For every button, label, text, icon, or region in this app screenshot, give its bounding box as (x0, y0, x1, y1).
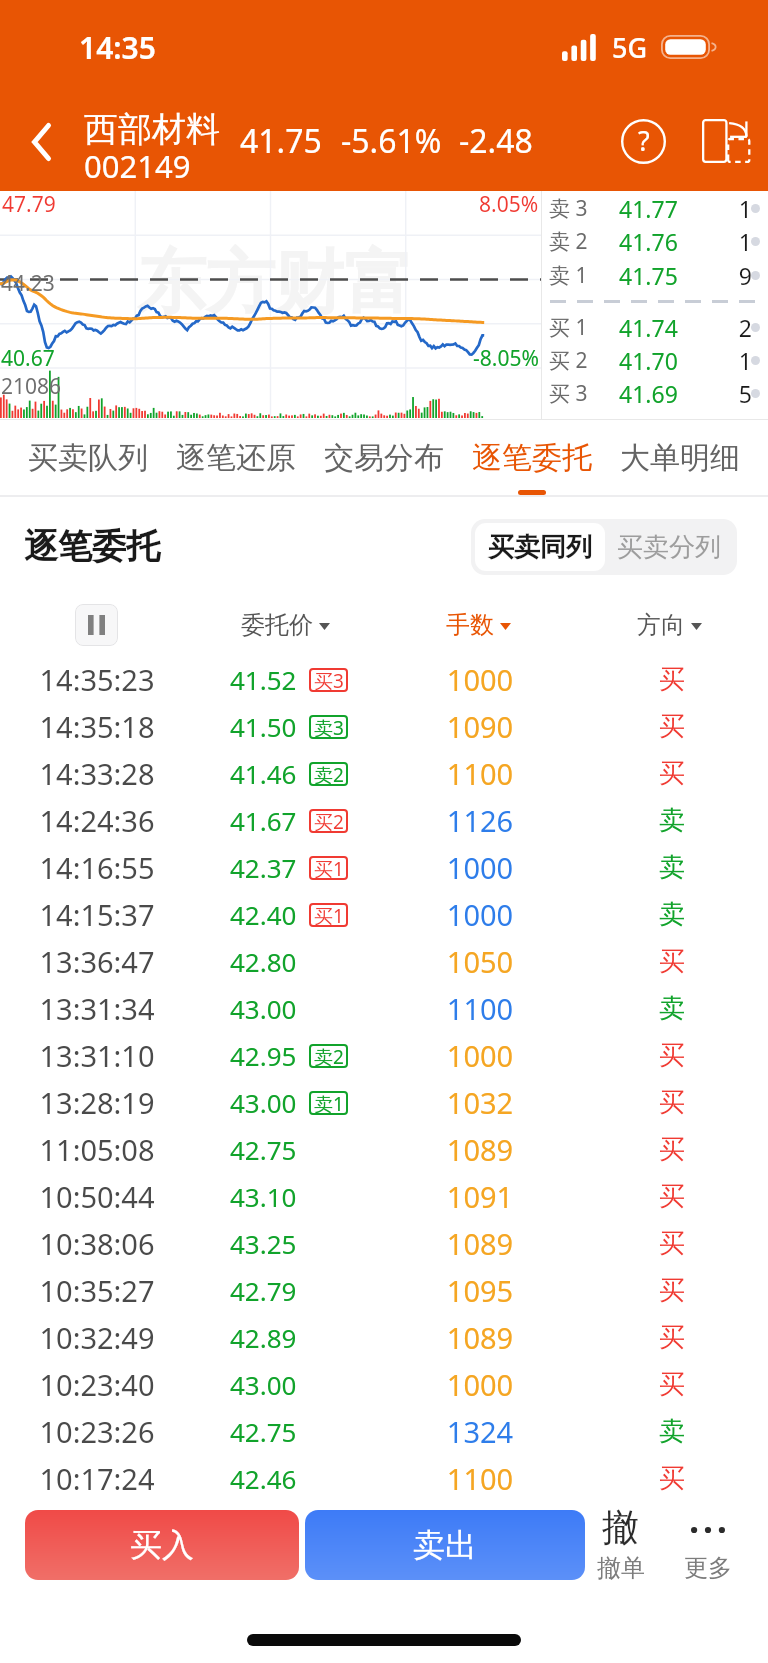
button[interactable]: 10:38:06 (0, 1220, 768, 1267)
button[interactable]: 逐笔还原 (166, 420, 306, 495)
button[interactable]: 卖出 (305, 1510, 585, 1580)
button[interactable]: 交易分布 (314, 420, 454, 495)
button[interactable]: 大单明细 (610, 420, 750, 495)
staticText: 1089 (400, 1318, 560, 1357)
staticText: 逐笔委托 (24, 525, 160, 568)
staticText: 买 (612, 663, 732, 696)
staticText: 42.75 (230, 1414, 297, 1449)
staticText: 13:31:10 (17, 1036, 177, 1075)
button[interactable]: 14:16:55 (0, 844, 768, 891)
staticText: 41.74 (619, 312, 678, 343)
staticText: 41.69 (619, 378, 678, 409)
staticText: 买 2 (549, 346, 588, 375)
button[interactable]: 卖 2 (542, 225, 768, 258)
staticText: 买 (612, 1227, 732, 1260)
staticText: 002149 (84, 145, 191, 187)
button[interactable]: 14:35:18 (0, 703, 768, 750)
staticText: 14:35:18 (17, 707, 177, 746)
button[interactable]: Split screen (694, 92, 762, 191)
staticText: 13:31:34 (17, 989, 177, 1028)
staticText: 卖 (612, 804, 732, 837)
staticText: 卖3 (314, 715, 344, 739)
button[interactable]: 买 1 (542, 311, 768, 344)
staticText: 1100 (400, 1459, 560, 1498)
button[interactable]: 13:31:10 (0, 1032, 768, 1079)
staticText: 5 (702, 378, 752, 409)
button[interactable]: Pause (75, 604, 118, 646)
staticText: 10:17:24 (17, 1459, 177, 1498)
staticText: 买 (612, 1086, 732, 1119)
staticText: 14:35:23 (17, 660, 177, 699)
button[interactable]: 委托价 (205, 596, 366, 654)
button[interactable]: 10:50:44 (0, 1173, 768, 1220)
button[interactable]: 13:36:47 (0, 938, 768, 985)
button[interactable]: 11:05:08 (0, 1126, 768, 1173)
button[interactable]: 卖 1 (542, 259, 768, 292)
staticText: 1000 (400, 848, 560, 887)
button[interactable]: 14:24:36 (0, 797, 768, 844)
staticText: 买 (612, 945, 732, 978)
staticText: 1 (702, 345, 752, 376)
staticText: 14:24:36 (17, 801, 177, 840)
button[interactable]: Help (603, 92, 683, 191)
staticText: -2.48 (459, 119, 533, 163)
staticText: 41.75 (619, 260, 678, 291)
button[interactable]: 撤单 (584, 1503, 657, 1587)
staticText: 买3 (314, 668, 344, 692)
button[interactable]: Back (0, 92, 84, 191)
staticText: 42.40 (230, 897, 297, 932)
button[interactable]: 买入 (25, 1510, 299, 1580)
button[interactable]: 卖 3 (542, 192, 768, 225)
button[interactable]: 买卖同列 (475, 523, 605, 571)
button[interactable]: 10:23:26 (0, 1408, 768, 1455)
button[interactable]: 买卖分列 (605, 523, 733, 571)
button[interactable]: 更多 (671, 1503, 744, 1587)
staticText: 撤单 (597, 1553, 645, 1583)
staticText: 买 (612, 1462, 732, 1495)
button[interactable]: 逐笔委托 (462, 420, 602, 495)
button[interactable]: 10:17:24 (0, 1455, 768, 1502)
staticText: 买卖队列 (28, 439, 148, 477)
button[interactable]: 14:15:37 (0, 891, 768, 938)
staticText: 1000 (400, 1365, 560, 1404)
button[interactable]: 10:35:27 (0, 1267, 768, 1314)
staticText: 方向 (637, 610, 685, 640)
staticText: 2 (702, 312, 752, 343)
staticText: 1100 (400, 754, 560, 793)
staticText: 卖出 (413, 1525, 477, 1565)
staticText: 1089 (400, 1224, 560, 1263)
button[interactable]: 手数 (398, 596, 559, 654)
staticText: 1090 (400, 707, 560, 746)
staticText: 1126 (400, 801, 560, 840)
staticText: 买1 (314, 856, 344, 880)
staticText: 41.75 (240, 119, 322, 163)
staticText: 1000 (400, 1036, 560, 1075)
button[interactable]: 14:35:23 (0, 656, 768, 703)
staticText: 卖2 (314, 762, 344, 786)
staticText: 10:38:06 (17, 1224, 177, 1263)
staticText: 8.05% (479, 190, 539, 219)
staticText: 1095 (400, 1271, 560, 1310)
button[interactable]: 买卖队列 (18, 420, 158, 495)
staticText: 大单明细 (620, 439, 740, 477)
button[interactable]: 10:32:49 (0, 1314, 768, 1361)
staticText: 买 1 (549, 313, 588, 342)
button[interactable]: 方向 (589, 596, 750, 654)
button[interactable]: 13:31:34 (0, 985, 768, 1032)
button[interactable]: 10:23:40 (0, 1361, 768, 1408)
button[interactable]: 买 2 (542, 344, 768, 377)
button[interactable]: 13:28:19 (0, 1079, 768, 1126)
staticText: 买 (612, 1368, 732, 1401)
staticText: 10:23:26 (17, 1412, 177, 1451)
staticText: 1000 (400, 660, 560, 699)
staticText: 11:05:08 (17, 1130, 177, 1169)
staticText: 买 (612, 1321, 732, 1354)
button[interactable]: 14:33:28 (0, 750, 768, 797)
staticText: 买 (612, 1133, 732, 1166)
staticText: 43.00 (230, 1367, 297, 1402)
staticText: 1050 (400, 942, 560, 981)
staticText: 买 (612, 1274, 732, 1307)
button[interactable]: 买 3 (542, 377, 768, 410)
staticText: 44.23 (1, 269, 55, 298)
staticText: 1 (702, 226, 752, 257)
